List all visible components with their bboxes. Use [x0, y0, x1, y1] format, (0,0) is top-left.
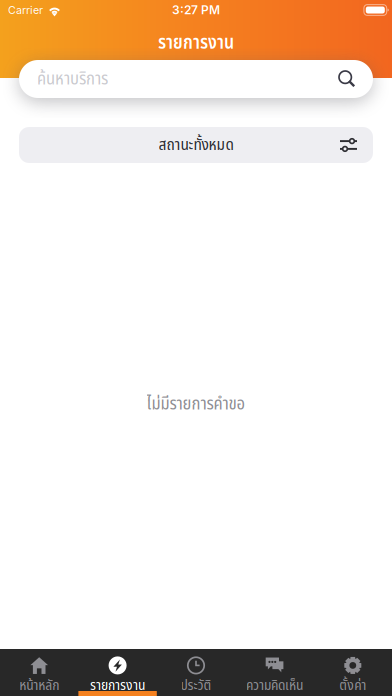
button[interactable]: ประวัติ — [157, 649, 235, 696]
staticText: ไม่มีรายการคำขอ — [146, 390, 245, 418]
staticText: รายการงาน — [90, 674, 145, 696]
button[interactable]: หน้าหลัก — [0, 649, 78, 696]
staticText: Carrier — [8, 3, 43, 16]
button[interactable]: รายการงาน — [78, 649, 157, 696]
staticText: ความคิดเห็น — [246, 674, 303, 696]
staticText: 3:27 PM — [172, 3, 220, 17]
staticText: หน้าหลัก — [19, 674, 59, 696]
button[interactable]: ตั้งค่า — [314, 649, 392, 696]
staticText: ตั้งค่า — [339, 674, 366, 696]
button[interactable]: สถานะทั้งหมด — [19, 127, 373, 163]
button[interactable]: ความคิดเห็น — [235, 649, 314, 696]
staticText: รายการงาน — [158, 29, 234, 57]
button[interactable]: ค้นหาบริการ — [19, 60, 373, 98]
staticText: สถานะทั้งหมด — [158, 132, 233, 158]
staticText: ค้นหาบริการ — [37, 65, 108, 93]
staticText: ประวัติ — [180, 674, 211, 696]
